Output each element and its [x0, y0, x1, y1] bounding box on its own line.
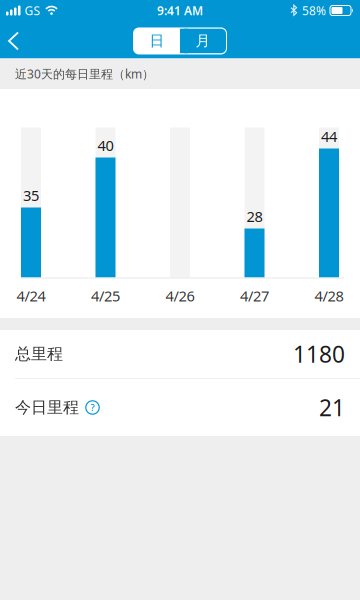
staticText: 4/28: [314, 286, 343, 305]
staticText: 月: [195, 32, 210, 50]
staticText: 28: [246, 206, 262, 226]
staticText: 近30天的每日里程（km）: [15, 66, 154, 82]
staticText: 日: [149, 32, 164, 50]
staticText: 4/24: [16, 286, 45, 305]
button[interactable]: Back: [0, 31, 29, 50]
staticText: 总里程: [15, 344, 63, 364]
button[interactable]: 日: [134, 29, 180, 53]
staticText: 21: [319, 392, 345, 422]
staticText: 4/26: [165, 286, 194, 305]
staticText: 1180: [293, 339, 345, 369]
staticText: 9:41 AM: [157, 2, 203, 18]
staticText: 4/27: [240, 286, 269, 305]
staticText: 40: [97, 135, 113, 155]
staticText: 今日里程: [15, 398, 79, 417]
staticText: ?: [90, 401, 94, 414]
staticText: 44: [321, 126, 337, 146]
staticText: GS: [24, 2, 40, 18]
button[interactable]: 月: [180, 29, 226, 53]
button[interactable]: 今日里程说明: [85, 400, 100, 415]
staticText: 4/25: [91, 286, 120, 305]
staticText: 58%: [302, 2, 326, 18]
staticText: 35: [23, 185, 39, 205]
